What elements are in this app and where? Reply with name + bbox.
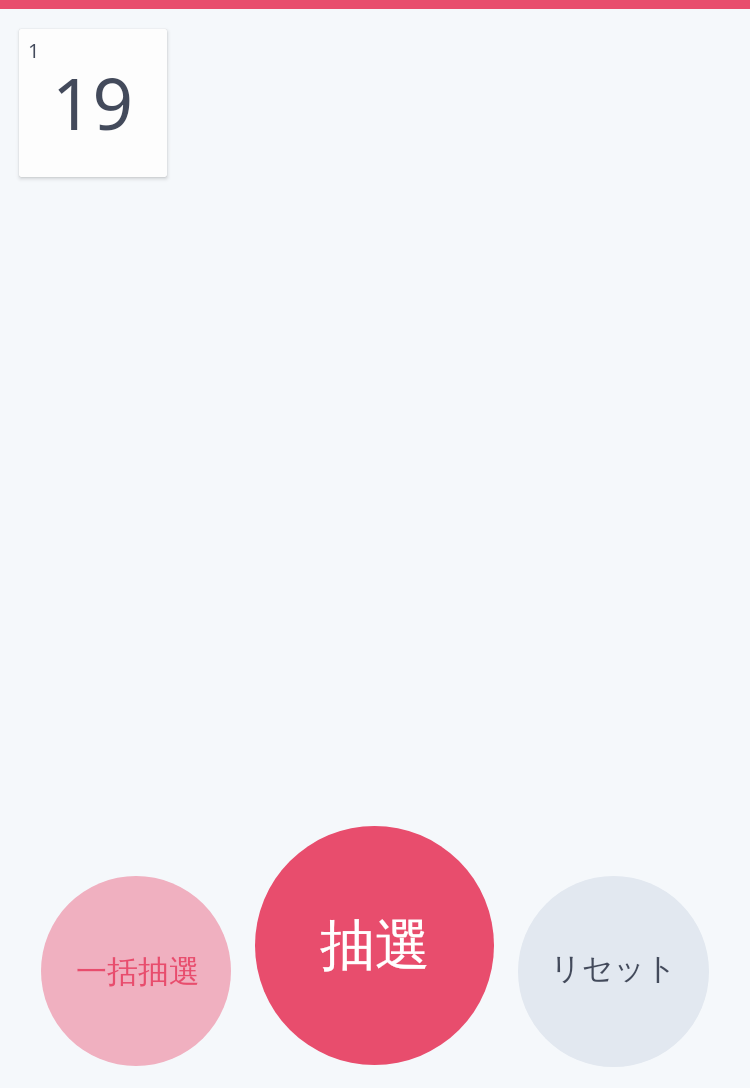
staticText: 19	[52, 54, 134, 151]
staticText: 1	[28, 37, 40, 64]
button[interactable]: Drawn number 1: 19	[19, 29, 167, 177]
staticText: 抽選	[320, 911, 430, 980]
staticText: 一括抽選	[76, 952, 200, 991]
button[interactable]: 抽選	[255, 826, 494, 1065]
button[interactable]: 一括抽選	[41, 876, 231, 1066]
button[interactable]: リセット	[518, 876, 709, 1067]
staticText: リセット	[550, 949, 677, 988]
